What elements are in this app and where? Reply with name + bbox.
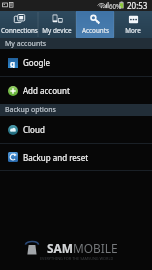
staticText: EVERYTHING FOR THE SAMSUNG WORLD (40, 256, 114, 261)
staticText: Cloud (23, 124, 45, 135)
button[interactable]: Accounts (76, 11, 114, 38)
staticText: My accounts (5, 39, 47, 49)
staticText: My device (42, 26, 72, 35)
staticText: Connections (1, 26, 38, 35)
staticText: MOBILE (73, 240, 118, 256)
staticText: g (10, 58, 16, 68)
button[interactable]: Backup and reset (0, 144, 152, 170)
button[interactable]: Cloud (0, 116, 152, 143)
button[interactable]: Add account (0, 77, 152, 104)
button[interactable]: Connections (0, 11, 38, 38)
staticText: Add account (23, 85, 70, 96)
staticText: More (125, 26, 141, 35)
staticText: SAM (47, 240, 73, 256)
staticText: 60% (109, 2, 122, 10)
button[interactable]: My device (38, 11, 76, 38)
staticText: Accounts (82, 26, 109, 35)
button[interactable]: More (114, 11, 152, 38)
staticText: 20:53 (127, 0, 148, 11)
staticText: Google (23, 57, 50, 68)
staticText: Backup and reset (23, 152, 89, 163)
staticText: Backup options (5, 105, 56, 115)
button[interactable]: g (0, 49, 152, 76)
